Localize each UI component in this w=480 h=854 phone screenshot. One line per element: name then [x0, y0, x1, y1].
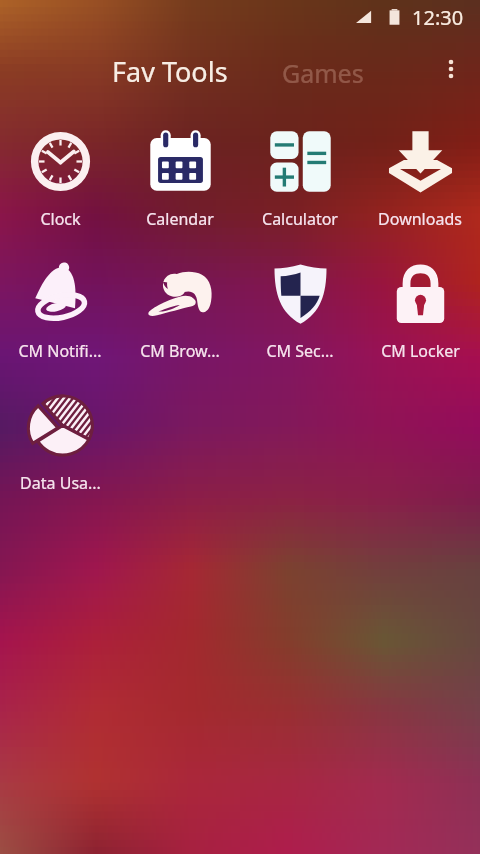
button[interactable]: Downloads — [360, 129, 480, 261]
staticText: Calendar — [146, 208, 214, 230]
staticText: CM Locker — [381, 340, 460, 362]
button[interactable]: CM Sec... — [240, 261, 360, 393]
staticText: CM Sec... — [266, 340, 334, 362]
staticText: CM Brow... — [140, 340, 220, 362]
staticText: Calculator — [262, 208, 338, 230]
button[interactable]: CM Brow... — [120, 261, 240, 393]
button[interactable]: Fav Tools — [112, 53, 228, 90]
staticText: Clock — [40, 208, 81, 230]
button[interactable]: CM Notifi... — [0, 261, 120, 393]
button[interactable]: Clock — [0, 129, 120, 261]
button[interactable]: CM Locker — [360, 261, 480, 393]
staticText: Data Usa... — [20, 472, 101, 494]
button[interactable]: Calculator — [240, 129, 360, 261]
staticText: 12:30 — [412, 4, 464, 31]
button[interactable]: More options — [432, 50, 470, 88]
button[interactable]: Calendar — [120, 129, 240, 261]
button[interactable]: Games — [282, 56, 364, 90]
staticText: Downloads — [378, 208, 462, 230]
button[interactable]: Data Usa... — [0, 393, 120, 525]
staticText: CM Notifi... — [18, 340, 102, 362]
